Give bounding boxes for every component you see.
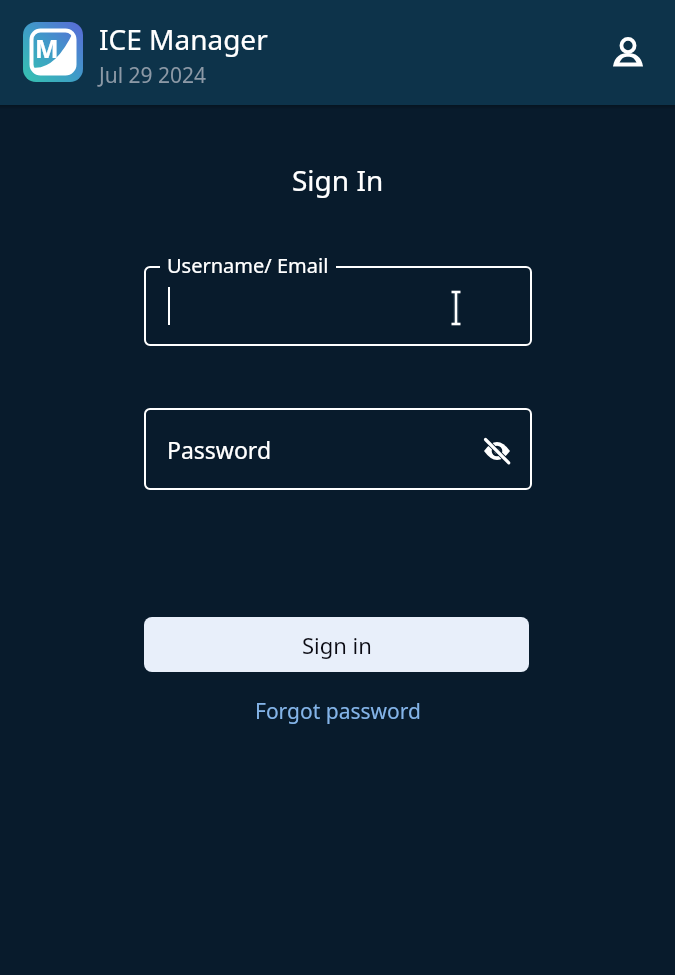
staticText: ICE Manager [99, 20, 268, 58]
staticText: Forgot password [255, 697, 421, 726]
button[interactable] [144, 266, 532, 346]
staticText: Jul 29 2024 [99, 61, 207, 90]
staticText: Sign in [302, 630, 372, 660]
button[interactable] [476, 430, 518, 472]
button[interactable] [600, 25, 656, 81]
button[interactable]: Sign in [144, 617, 529, 672]
button[interactable]: Forgot password [255, 697, 421, 726]
staticText: Username/ Email [167, 252, 329, 279]
staticText: Sign In [292, 161, 384, 199]
button[interactable]: Password [144, 408, 532, 490]
staticText: M [35, 31, 59, 65]
staticText: Password [167, 434, 272, 465]
